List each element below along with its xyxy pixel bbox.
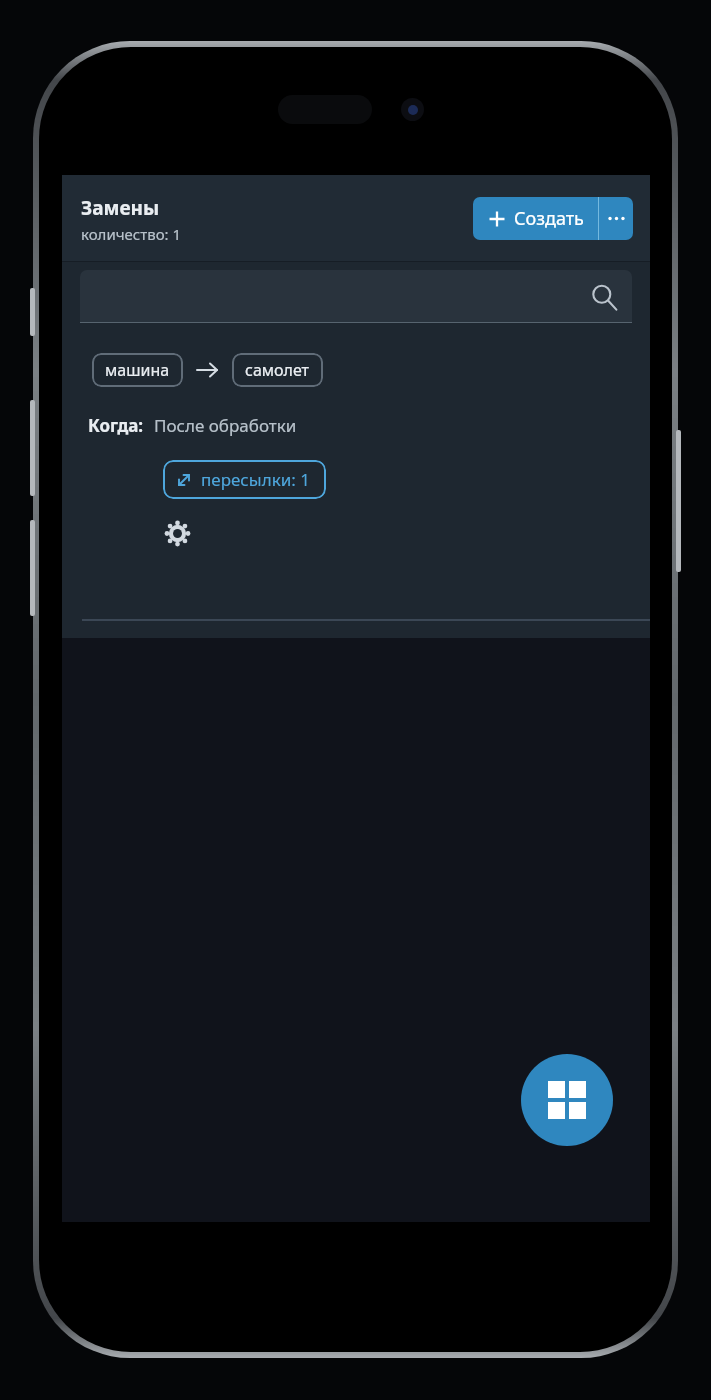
button[interactable]: Search (80, 270, 632, 323)
staticText: самолет (245, 359, 310, 381)
button[interactable]: машина (62, 325, 650, 638)
staticText: Создать (514, 206, 584, 231)
other: Search (588, 281, 620, 313)
button[interactable]: самолет (232, 353, 323, 387)
button[interactable]: Создать (473, 197, 598, 240)
staticText: количество: 1 (81, 224, 182, 244)
button[interactable]: машина (92, 353, 183, 387)
button[interactable]: More options (599, 197, 633, 240)
staticText: пересылки: 1 (201, 468, 310, 491)
staticText: Замены (81, 195, 160, 221)
button[interactable]: пересылки: 1 (163, 460, 326, 499)
button[interactable]: Grid view (521, 1054, 613, 1146)
button[interactable]: Settings (157, 513, 197, 553)
staticText: Когда: (88, 414, 144, 437)
staticText: После обработки (154, 414, 297, 437)
staticText: машина (105, 359, 170, 381)
